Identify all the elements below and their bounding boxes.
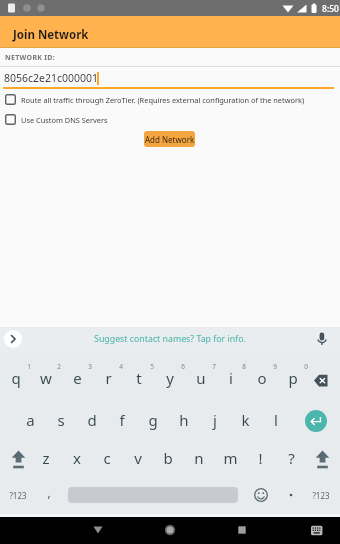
- staticText: y: [166, 368, 174, 388]
- button[interactable]: x: [62, 445, 92, 471]
- button[interactable]: u: [186, 365, 216, 391]
- button[interactable]: ?: [276, 445, 306, 471]
- staticText: p: [288, 368, 298, 388]
- button[interactable]: [305, 410, 327, 432]
- staticText: t: [136, 368, 142, 388]
- staticText: Suggest contact names? Tap for info.: [94, 333, 246, 345]
- button[interactable]: s: [46, 407, 76, 433]
- staticText: 4: [119, 362, 123, 371]
- button[interactable]: !: [245, 445, 275, 471]
- staticText: k: [241, 410, 250, 430]
- staticText: r: [105, 368, 112, 388]
- staticText: i: [229, 368, 233, 388]
- staticText: 0: [304, 362, 308, 371]
- staticText: 7: [212, 362, 216, 371]
- button[interactable]: [4, 330, 22, 348]
- button[interactable]: Suggest contact names? Tap for info.: [60, 329, 280, 349]
- button[interactable]: [0, 67, 340, 89]
- staticText: e: [73, 368, 82, 388]
- button[interactable]: [252, 486, 270, 504]
- button[interactable]: a: [15, 407, 45, 433]
- staticText: n: [194, 448, 204, 468]
- button[interactable]: [0, 111, 180, 128]
- staticText: 8056c2e21c000001: [4, 71, 99, 85]
- button[interactable]: i: [216, 365, 246, 391]
- staticText: u: [196, 368, 206, 388]
- staticText: w: [40, 368, 52, 388]
- button[interactable]: l: [261, 407, 291, 433]
- staticText: 8:50: [322, 3, 339, 15]
- staticText: x: [73, 448, 81, 468]
- staticText: h: [179, 410, 189, 430]
- button[interactable]: b: [153, 445, 183, 471]
- staticText: ,: [47, 484, 51, 500]
- staticText: o: [257, 368, 267, 388]
- staticText: Add Network: [145, 134, 195, 145]
- staticText: q: [11, 368, 21, 388]
- button[interactable]: [7, 448, 30, 471]
- staticText: b: [163, 448, 173, 468]
- button[interactable]: [234, 522, 250, 538]
- button[interactable]: f: [107, 407, 137, 433]
- button[interactable]: h: [169, 407, 199, 433]
- button[interactable]: d: [77, 407, 107, 433]
- staticText: Route all traffic through ZeroTier. (Req…: [21, 95, 305, 105]
- button[interactable]: m: [215, 445, 245, 471]
- staticText: 2: [57, 362, 61, 371]
- staticText: ?: [288, 448, 295, 468]
- button[interactable]: ?123: [304, 485, 338, 505]
- button[interactable]: y: [155, 365, 185, 391]
- staticText: 1: [27, 362, 31, 371]
- button[interactable]: q: [1, 365, 31, 391]
- button[interactable]: t: [124, 365, 154, 391]
- button[interactable]: [311, 448, 334, 471]
- button[interactable]: j: [200, 407, 230, 433]
- staticText: 5: [150, 362, 154, 371]
- button[interactable]: k: [230, 407, 260, 433]
- button[interactable]: w: [31, 365, 61, 391]
- button[interactable]: v: [123, 445, 153, 471]
- button[interactable]: [307, 368, 335, 392]
- button[interactable]: [308, 522, 326, 538]
- staticText: ?123: [9, 490, 27, 501]
- staticText: Join Network: [13, 27, 89, 43]
- staticText: 9: [273, 362, 277, 371]
- staticText: f: [119, 410, 125, 430]
- button[interactable]: ,: [39, 482, 59, 502]
- button[interactable]: [90, 522, 106, 538]
- staticText: c: [103, 448, 111, 468]
- staticText: 6: [181, 362, 185, 371]
- button[interactable]: r: [93, 365, 123, 391]
- button[interactable]: p: [278, 365, 308, 391]
- button[interactable]: Add Network: [144, 131, 195, 147]
- button[interactable]: g: [138, 407, 168, 433]
- staticText: 3: [88, 362, 92, 371]
- staticText: !: [258, 448, 263, 468]
- staticText: Use Custom DNS Servers: [21, 115, 108, 125]
- button[interactable]: c: [92, 445, 122, 471]
- button[interactable]: ?123: [1, 485, 35, 505]
- staticText: z: [42, 448, 50, 468]
- staticText: m: [223, 448, 238, 468]
- staticText: s: [57, 410, 65, 430]
- button[interactable]: n: [184, 445, 214, 471]
- button[interactable]: z: [31, 445, 61, 471]
- button[interactable]: [162, 522, 178, 538]
- staticText: l: [274, 410, 278, 430]
- staticText: 8: [242, 362, 246, 371]
- staticText: g: [148, 410, 158, 430]
- staticText: ?123: [312, 490, 330, 501]
- staticText: a: [26, 410, 35, 430]
- staticText: v: [134, 448, 142, 468]
- button[interactable]: [313, 330, 331, 348]
- button[interactable]: e: [62, 365, 92, 391]
- button[interactable]: [0, 91, 340, 108]
- staticText: j: [213, 410, 217, 430]
- staticText: NETWORK ID:: [5, 53, 56, 63]
- button[interactable]: o: [247, 365, 277, 391]
- staticText: d: [87, 410, 97, 430]
